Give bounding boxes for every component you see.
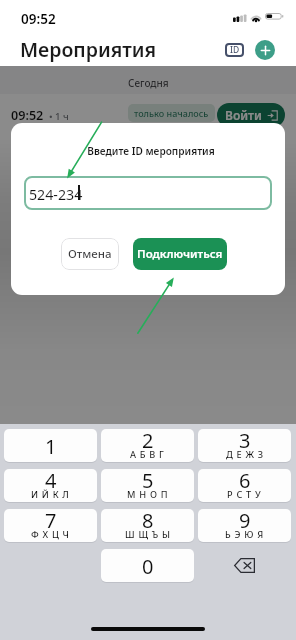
button[interactable]: Backspace <box>198 549 291 582</box>
staticText: 5 <box>142 469 154 494</box>
staticText: Введите ID мероприятия <box>14 144 285 158</box>
staticText: 9 <box>239 509 251 534</box>
staticText: 8 <box>142 509 154 534</box>
button[interactable]: 7 <box>4 509 97 542</box>
staticText: 7 <box>45 509 57 534</box>
staticText: 2 <box>142 429 154 454</box>
button[interactable]: 8 <box>101 509 194 542</box>
staticText: 3 <box>239 429 251 454</box>
staticText: 1 <box>45 433 57 460</box>
staticText: И Й К Л <box>31 488 70 501</box>
button[interactable]: 0 <box>101 549 194 582</box>
staticText: Ш Щ Ъ Ы <box>125 528 171 541</box>
staticText: Р С Т У <box>227 488 262 501</box>
staticText: 09:52 <box>11 107 44 124</box>
staticText: Ь Э Ю Я <box>225 528 264 541</box>
button[interactable]: 9 <box>198 509 291 542</box>
staticText: Д Е Ж З <box>226 448 264 461</box>
staticText: Подключиться <box>137 246 223 262</box>
button[interactable]: 2 <box>101 429 194 462</box>
staticText: • 1 ч <box>49 110 69 123</box>
button[interactable]: Add event <box>255 40 275 60</box>
staticText: Мероприятия <box>20 36 157 63</box>
button[interactable]: 3 <box>198 429 291 462</box>
button[interactable]: Войти <box>217 103 285 127</box>
button[interactable]: 6 <box>198 469 291 502</box>
button[interactable]: Event ID <box>225 43 244 57</box>
button[interactable]: 1 <box>4 429 97 462</box>
staticText: А Б В Г <box>130 448 165 461</box>
staticText: Сегодня <box>128 76 169 90</box>
button[interactable]: Отмена <box>61 238 119 270</box>
staticText: 524-234 <box>29 185 83 204</box>
staticText: 09:52 <box>21 10 56 28</box>
staticText: Ф Х Ц Ч <box>31 528 70 541</box>
button[interactable]: 5 <box>101 469 194 502</box>
staticText: ID <box>230 44 240 56</box>
button[interactable]: Подключиться <box>133 238 227 270</box>
staticText: 6 <box>239 469 251 494</box>
staticText: Войти <box>225 107 262 123</box>
staticText: 0 <box>142 553 154 580</box>
button[interactable]: Event ID input <box>24 176 272 210</box>
button[interactable]: 4 <box>4 469 97 502</box>
staticText: 4 <box>45 469 57 494</box>
staticText: М Н О П <box>127 488 169 501</box>
staticText: Отмена <box>68 246 112 262</box>
staticText: только началось <box>134 107 209 119</box>
